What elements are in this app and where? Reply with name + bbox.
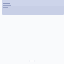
button[interactable]: Action button <box>29 60 35 62</box>
button[interactable] <box>2 0 64 15</box>
